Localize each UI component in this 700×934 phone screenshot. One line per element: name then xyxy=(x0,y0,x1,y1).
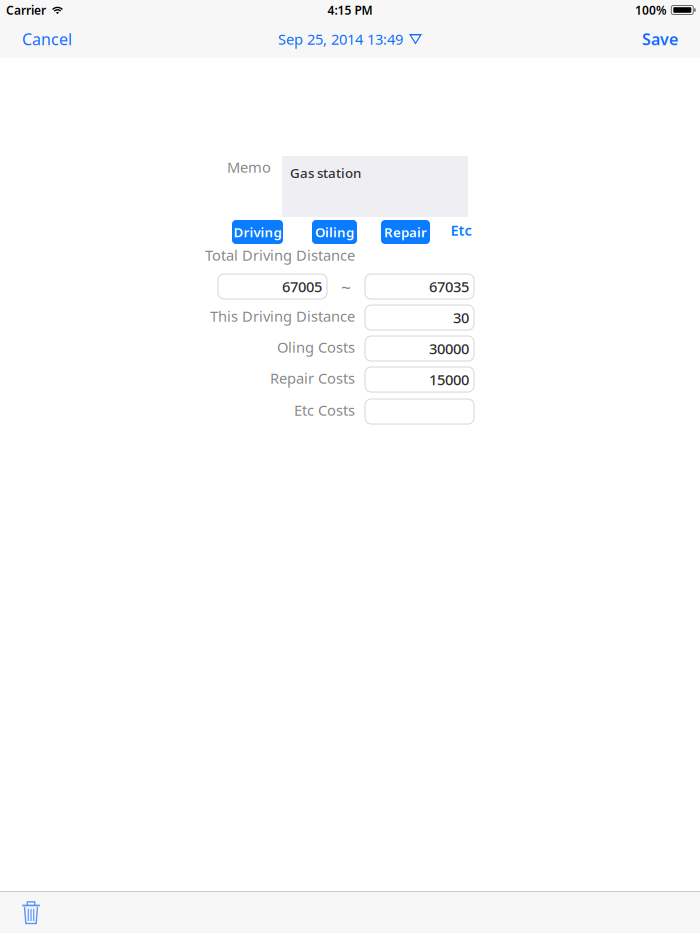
staticText: Oiling xyxy=(315,223,354,241)
staticText: 67005 xyxy=(282,277,322,296)
staticText: 30 xyxy=(453,308,469,327)
button[interactable]: 30 xyxy=(365,305,474,330)
staticText: Repair xyxy=(384,223,427,241)
button[interactable]: 67005 xyxy=(218,274,327,299)
staticText: 4:15 PM xyxy=(327,2,372,18)
staticText: Etc Costs xyxy=(294,400,355,420)
button[interactable]: 15000 xyxy=(365,367,474,392)
button[interactable]: 30000 xyxy=(365,336,474,361)
staticText: Oling Costs xyxy=(277,337,355,357)
button[interactable]: 67035 xyxy=(365,274,474,299)
staticText: Carrier xyxy=(6,2,46,18)
staticText: Repair Costs xyxy=(270,368,355,388)
staticText: ~ xyxy=(341,276,351,299)
button[interactable]: Save xyxy=(632,20,688,58)
staticText: Memo xyxy=(227,157,271,177)
staticText: Save xyxy=(642,28,678,50)
button[interactable]: Repair xyxy=(381,220,430,244)
staticText: 15000 xyxy=(429,370,469,389)
staticText: 67035 xyxy=(429,277,469,296)
staticText: 100% xyxy=(635,2,667,18)
staticText: 30000 xyxy=(429,339,469,358)
button[interactable]: Driving xyxy=(232,220,283,244)
staticText: This Driving Distance xyxy=(210,306,355,326)
button[interactable]: Oiling xyxy=(312,220,357,244)
staticText: Gas station xyxy=(290,164,361,182)
staticText: Total Driving Distance xyxy=(205,245,355,265)
button[interactable] xyxy=(365,399,474,424)
button[interactable]: Sep 25, 2014 13:49 xyxy=(278,20,422,58)
staticText: Cancel xyxy=(22,28,72,50)
staticText: Sep 25, 2014 13:49 xyxy=(278,29,403,49)
button[interactable]: Etc xyxy=(447,218,475,242)
staticText: Driving xyxy=(233,223,281,241)
staticText: Etc xyxy=(450,220,471,240)
button[interactable]: Delete xyxy=(9,892,53,933)
button[interactable]: Cancel xyxy=(12,20,82,58)
